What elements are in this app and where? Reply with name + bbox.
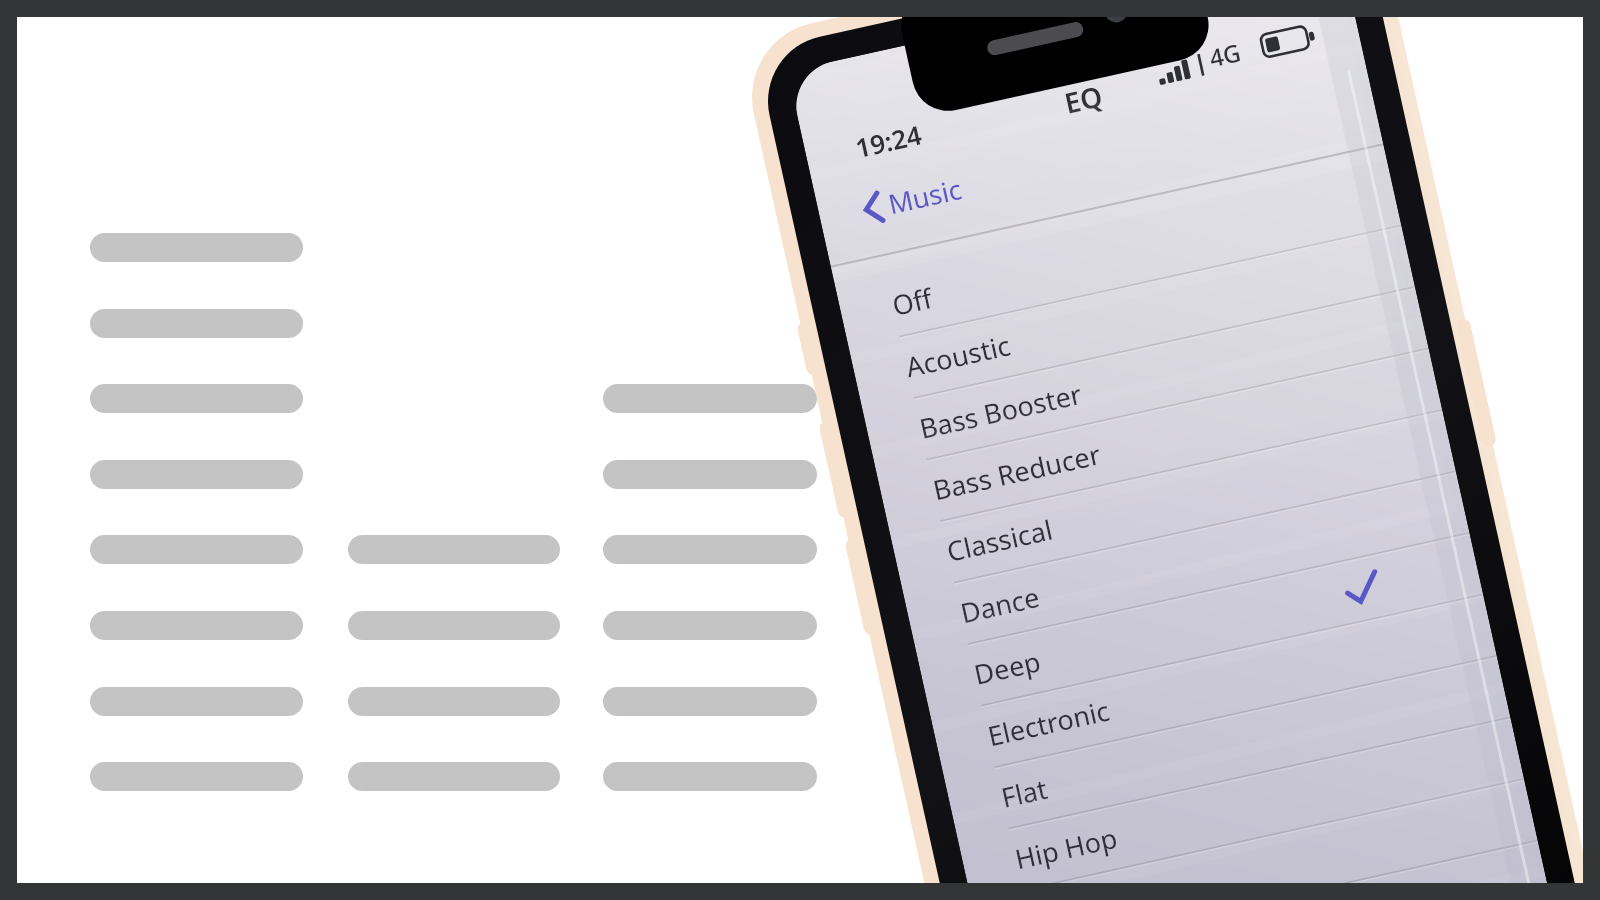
button[interactable]: EQ preset screen mockup: [0, 0, 1600, 900]
